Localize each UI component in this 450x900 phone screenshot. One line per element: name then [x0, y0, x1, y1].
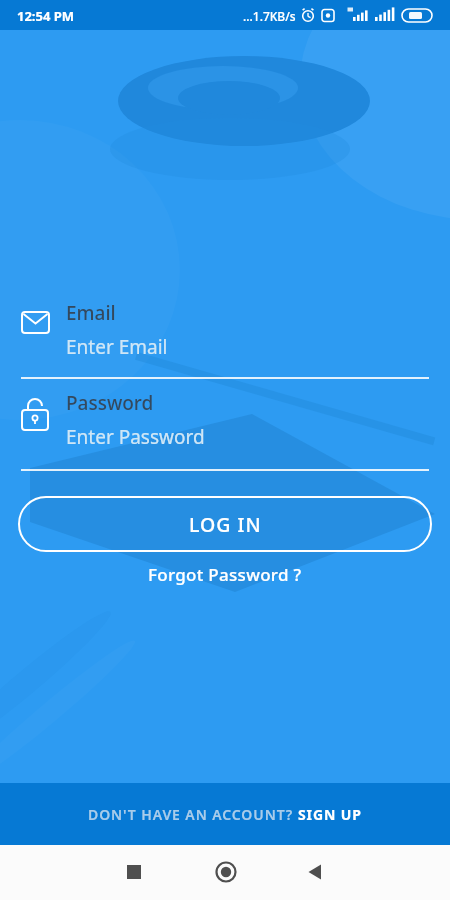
button[interactable]: Password: [18, 390, 432, 470]
staticText: 12:54 PM: [17, 7, 75, 25]
staticText: Enter Password: [66, 424, 205, 450]
button[interactable]: [204, 857, 248, 887]
button[interactable]: [112, 857, 156, 887]
button[interactable]: LOG IN: [18, 496, 432, 552]
staticText: LOG IN: [189, 511, 262, 538]
button[interactable]: [292, 857, 336, 887]
staticText: Password: [66, 390, 154, 416]
button[interactable]: DON'T HAVE AN ACCOUNT?: [0, 783, 450, 845]
staticText: Enter Email: [66, 334, 168, 360]
button[interactable]: Forgot Password ?: [148, 563, 302, 586]
staticText: ...1.7KB/s: [243, 8, 296, 24]
button[interactable]: Email: [18, 298, 432, 378]
staticText: DON'T HAVE AN ACCOUNT?: [88, 805, 298, 824]
staticText: Forgot Password ?: [148, 563, 302, 586]
staticText: SIGN UP: [298, 805, 362, 824]
staticText: Email: [66, 300, 116, 326]
